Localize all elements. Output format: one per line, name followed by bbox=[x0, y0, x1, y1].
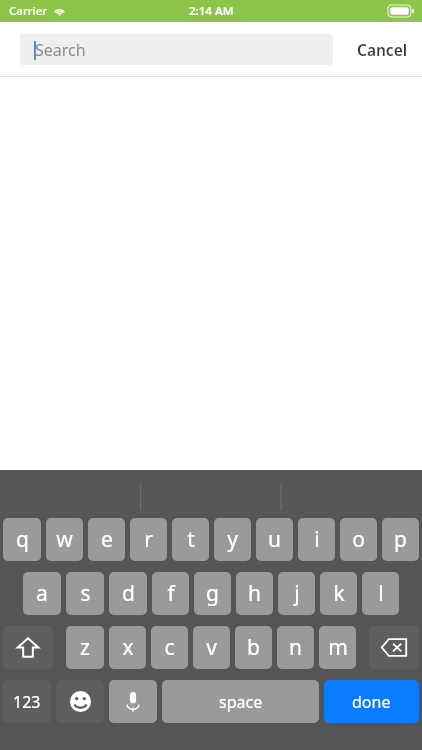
staticText: Carrier bbox=[9, 3, 48, 19]
button[interactable]: e bbox=[88, 518, 125, 561]
button[interactable]: n bbox=[277, 626, 314, 669]
button[interactable]: v bbox=[193, 626, 230, 669]
staticText: 123 bbox=[13, 691, 41, 713]
staticText: r bbox=[144, 525, 153, 554]
button[interactable]: t bbox=[172, 518, 209, 561]
button[interactable]: l bbox=[362, 572, 399, 615]
staticText: l bbox=[378, 579, 384, 608]
button[interactable]: space bbox=[162, 680, 319, 723]
staticText: d bbox=[122, 579, 135, 608]
button[interactable]: i bbox=[298, 518, 335, 561]
button[interactable]: d bbox=[109, 572, 147, 615]
staticText: u bbox=[268, 525, 281, 554]
staticText: Search bbox=[35, 39, 86, 61]
staticText: a bbox=[36, 579, 48, 608]
button[interactable]: s bbox=[66, 572, 104, 615]
button[interactable]: k bbox=[320, 572, 357, 615]
staticText: g bbox=[206, 579, 219, 608]
staticText: t bbox=[187, 525, 195, 554]
staticText: Cancel bbox=[357, 39, 408, 60]
staticText: v bbox=[206, 633, 217, 662]
staticText: p bbox=[394, 525, 407, 554]
staticText: i bbox=[314, 525, 320, 554]
button[interactable]: h bbox=[236, 572, 273, 615]
button[interactable]: z bbox=[66, 626, 104, 669]
button[interactable]: f bbox=[152, 572, 189, 615]
button[interactable]: u bbox=[256, 518, 293, 561]
button[interactable]: m bbox=[319, 626, 356, 669]
button[interactable]: Voice input bbox=[109, 680, 157, 723]
staticText: q bbox=[16, 525, 29, 554]
staticText: h bbox=[248, 579, 261, 608]
staticText: z bbox=[80, 633, 90, 662]
button[interactable]: b bbox=[235, 626, 272, 669]
button[interactable]: 123 bbox=[3, 680, 51, 723]
staticText: y bbox=[227, 525, 238, 554]
staticText: s bbox=[80, 579, 91, 608]
button[interactable]: x bbox=[109, 626, 146, 669]
staticText: e bbox=[101, 525, 113, 554]
staticText: j bbox=[294, 579, 300, 608]
button[interactable]: j bbox=[278, 572, 315, 615]
staticText: o bbox=[352, 525, 365, 554]
staticText: x bbox=[122, 633, 134, 662]
button[interactable]: q bbox=[3, 518, 41, 561]
button[interactable]: g bbox=[194, 572, 231, 615]
button[interactable]: y bbox=[214, 518, 251, 561]
staticText: b bbox=[247, 633, 260, 662]
staticText: k bbox=[333, 579, 345, 608]
staticText: w bbox=[56, 525, 73, 554]
button[interactable]: Cancel bbox=[357, 39, 408, 60]
button[interactable]: r bbox=[130, 518, 167, 561]
staticText: 2:14 AM bbox=[189, 3, 234, 19]
button[interactable]: p bbox=[382, 518, 419, 561]
button[interactable]: c bbox=[151, 626, 188, 669]
staticText: space bbox=[219, 691, 263, 713]
button[interactable]: done bbox=[324, 680, 419, 723]
staticText: f bbox=[167, 579, 175, 608]
button[interactable]: a bbox=[23, 572, 61, 615]
button[interactable]: w bbox=[46, 518, 83, 561]
button[interactable]: Backspace bbox=[369, 626, 419, 669]
button[interactable]: Search bbox=[20, 34, 333, 65]
button[interactable]: Shift bbox=[3, 626, 53, 669]
button[interactable]: Emoji bbox=[56, 680, 104, 723]
staticText: done bbox=[352, 691, 391, 713]
staticText: n bbox=[289, 633, 302, 662]
button[interactable]: o bbox=[340, 518, 377, 561]
staticText: c bbox=[164, 633, 175, 662]
staticText: m bbox=[328, 633, 348, 662]
